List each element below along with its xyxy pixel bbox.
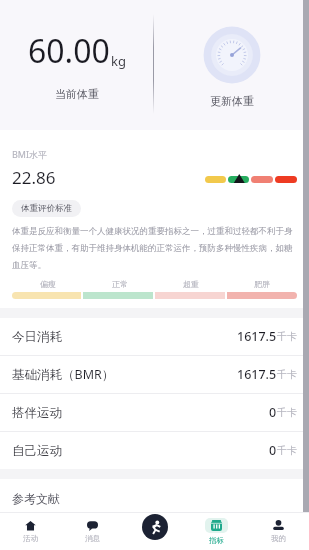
- staticText: 正常: [112, 279, 128, 289]
- staticText: 0: [269, 404, 277, 421]
- other: 指标: [211, 520, 222, 531]
- staticText: 60.00: [28, 29, 110, 73]
- button[interactable]: 今日消耗: [0, 318, 309, 355]
- button[interactable]: 搭伴运动: [0, 394, 309, 431]
- staticText: 我的: [271, 534, 286, 543]
- staticText: 体重评价标准: [21, 203, 72, 214]
- button[interactable]: 国家体育总局《全民健身指南》- 综合运动能力评: [12, 514, 261, 530]
- staticText: 肥胖: [254, 279, 270, 289]
- staticText: 今日消耗: [12, 329, 62, 345]
- staticText: 0: [269, 442, 277, 459]
- other: 消息: [87, 520, 98, 531]
- other: 活动: [25, 520, 36, 531]
- button[interactable]: 指标: [185, 512, 247, 550]
- staticText: 自己运动: [12, 443, 62, 459]
- button[interactable]: 消息: [61, 512, 123, 550]
- staticText: 千卡: [277, 330, 297, 343]
- button[interactable]: 基础消耗（BMR）: [0, 356, 309, 393]
- staticText: 国家体育总局《全民健身指南》- 综合运动能力评: [12, 514, 261, 530]
- button[interactable]: 自己运动: [0, 432, 309, 469]
- staticText: 千卡: [277, 406, 297, 419]
- staticText: 搭伴运动: [12, 405, 62, 421]
- staticText: 参考文献: [12, 491, 60, 506]
- staticText: 更新体重: [210, 94, 254, 108]
- staticText: 超重: [183, 279, 199, 289]
- staticText: 基础消耗（BMR）: [12, 366, 115, 383]
- button[interactable]: 我的: [247, 512, 309, 550]
- staticText: 1617.5: [237, 328, 277, 345]
- other: 我的: [273, 520, 284, 531]
- staticText: 1617.5: [237, 366, 277, 383]
- staticText: 指标: [209, 536, 224, 545]
- staticText: 当前体重: [55, 87, 99, 101]
- button[interactable]: 活动: [0, 512, 61, 550]
- staticText: 活动: [23, 534, 38, 543]
- staticText: 体重是反应和衡量一个人健康状况的重要指标之一，过重和过轻都不利于身体健康。: [12, 226, 297, 237]
- staticText: BMI水平: [12, 148, 48, 160]
- button[interactable]: 运动: [142, 514, 168, 540]
- button[interactable]: 更新体重: [154, 0, 309, 130]
- staticText: 千卡: [277, 444, 297, 457]
- staticText: 千卡: [277, 368, 297, 381]
- staticText: 消息: [85, 534, 100, 543]
- other: 更新体重: [203, 26, 261, 84]
- staticText: 血压等。: [12, 260, 46, 271]
- staticText: 偏瘦: [40, 279, 56, 289]
- staticText: 保持正常体重，有助于维持身体机能的正常运作，预防多种慢性疾病，如糖尿病、高: [12, 243, 297, 254]
- staticText: 22.86: [12, 166, 56, 189]
- staticText: kg: [111, 52, 126, 70]
